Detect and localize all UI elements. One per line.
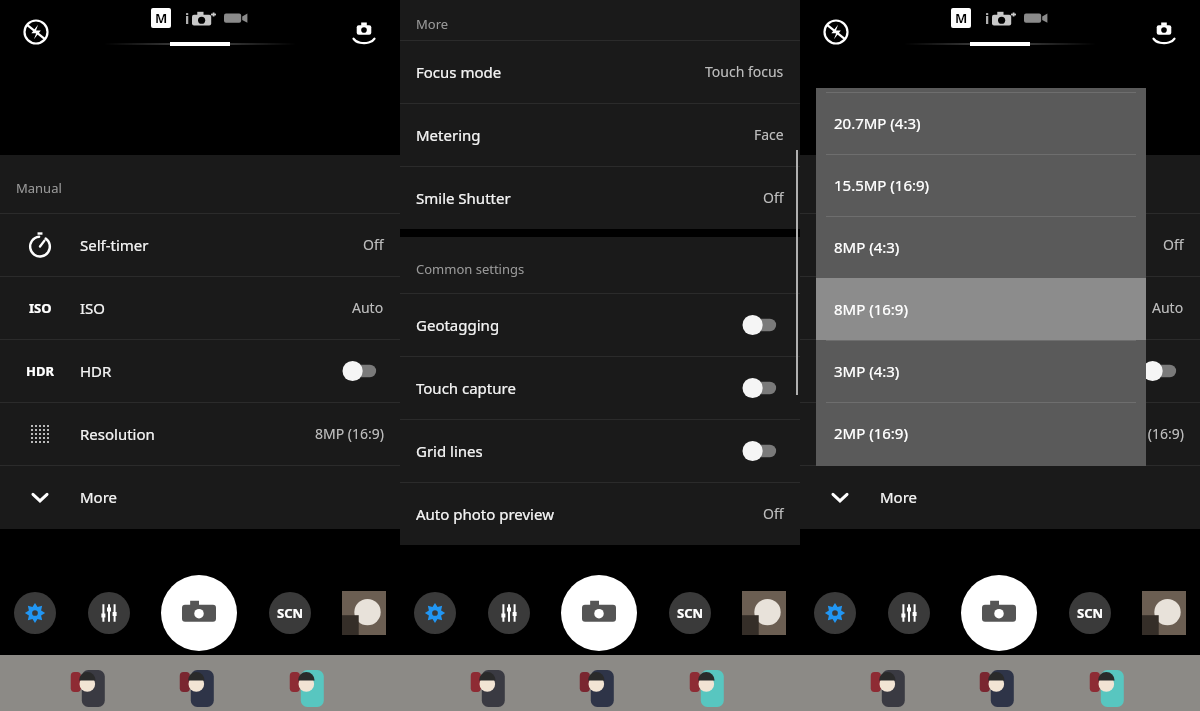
staticText: Auto <box>1152 298 1184 317</box>
button[interactable]: Switch camera <box>1142 10 1186 54</box>
button[interactable]: M <box>951 8 971 28</box>
button[interactable]: Shutter <box>961 575 1037 651</box>
staticText: 8MP (16:9) <box>834 299 908 319</box>
button[interactable]: Shutter <box>161 575 237 651</box>
button[interactable]: Self-timer <box>800 213 1200 276</box>
staticText: M <box>155 9 168 27</box>
button[interactable]: 15.5MP (16:9) <box>816 154 1146 216</box>
staticText: Manual <box>816 179 862 197</box>
staticText: i <box>185 9 190 28</box>
button[interactable]: Gallery <box>342 591 386 635</box>
button[interactable]: 20.7MP (4:3) <box>816 92 1146 154</box>
staticText: Resolution <box>80 424 155 444</box>
staticText: Geotagging <box>416 315 500 335</box>
button[interactable]: 2MP (16:9) <box>816 402 1146 464</box>
staticText: HDR <box>80 361 112 381</box>
staticText: Auto photo preview <box>416 504 554 524</box>
button[interactable]: Switch camera <box>342 10 386 54</box>
button[interactable]: Auto photo preview <box>400 482 800 545</box>
button[interactable]: Flash off <box>814 10 858 54</box>
button[interactable]: Geotagging <box>400 293 800 356</box>
staticText: 3MP (4:3) <box>834 361 900 381</box>
staticText: SCN <box>277 604 304 622</box>
button[interactable]: Gallery <box>1142 591 1186 635</box>
staticText: 8MP (4:3) <box>834 237 900 257</box>
button[interactable]: 3MP (4:3) <box>816 340 1146 402</box>
staticText: Off <box>1163 235 1184 254</box>
staticText: Touch capture <box>416 378 516 398</box>
staticText: Self-timer <box>880 235 949 255</box>
staticText: Resolution <box>880 424 955 444</box>
button[interactable]: ISO <box>0 276 400 339</box>
staticText: SCN <box>677 604 704 622</box>
staticText: ISO <box>829 299 852 317</box>
staticText: i <box>985 9 990 28</box>
button[interactable]: 8MP (4:3) <box>816 216 1146 278</box>
staticText: 15.5MP (16:9) <box>834 175 930 195</box>
staticText: HDR <box>826 362 854 380</box>
staticText: Grid lines <box>416 441 483 461</box>
staticText: Smile Shutter <box>416 188 511 208</box>
staticText: HDR <box>880 361 912 381</box>
staticText: More <box>416 15 449 33</box>
button[interactable]: M <box>151 8 171 28</box>
button[interactable]: Metering <box>400 103 800 166</box>
button[interactable]: HDR <box>0 339 400 402</box>
staticText: ISO <box>880 298 906 318</box>
staticText: 20.7MP (4:3) <box>834 113 921 133</box>
button[interactable]: Focus mode <box>400 40 800 103</box>
button[interactable]: Touch capture <box>400 356 800 419</box>
button[interactable]: Video <box>1024 10 1050 26</box>
staticText: More <box>880 487 918 507</box>
button[interactable]: Superior auto <box>185 9 216 28</box>
button[interactable]: Settings <box>14 592 56 634</box>
button[interactable]: SCN <box>669 592 711 634</box>
button[interactable]: Video <box>224 10 250 26</box>
staticText: M <box>955 9 968 27</box>
staticText: More <box>80 487 118 507</box>
button[interactable]: Adjust <box>888 592 930 634</box>
button[interactable]: SCN <box>269 592 311 634</box>
button[interactable]: Flash off <box>14 10 58 54</box>
staticText: Focus mode <box>416 62 502 82</box>
staticText: HDR <box>26 362 54 380</box>
button[interactable]: HDR <box>800 339 1200 402</box>
staticText: Self-timer <box>80 235 149 255</box>
staticText: SCN <box>1077 604 1104 622</box>
staticText: ISO <box>29 299 52 317</box>
staticText: Off <box>363 235 384 254</box>
button[interactable]: Gallery <box>742 591 786 635</box>
button[interactable]: Superior auto <box>985 9 1016 28</box>
staticText: Metering <box>416 125 481 145</box>
button[interactable]: Adjust <box>88 592 130 634</box>
button[interactable]: Grid lines <box>400 419 800 482</box>
staticText: Common settings <box>416 260 525 278</box>
button[interactable]: ISO <box>800 276 1200 339</box>
staticText: Manual <box>16 179 62 197</box>
button[interactable]: Resolution <box>800 402 1200 465</box>
staticText: Auto <box>352 298 384 317</box>
button[interactable]: Adjust <box>488 592 530 634</box>
button[interactable]: 8MP (16:9) <box>816 278 1146 340</box>
button[interactable]: More <box>0 465 400 529</box>
button[interactable]: Resolution <box>0 402 400 465</box>
staticText: 8MP (16:9) <box>1115 424 1184 443</box>
staticText: Touch focus <box>705 62 784 81</box>
staticText: Face <box>754 125 784 144</box>
button[interactable]: More <box>800 465 1200 529</box>
button[interactable]: Settings <box>814 592 856 634</box>
button[interactable]: Self-timer <box>0 213 400 276</box>
button[interactable]: SCN <box>1069 592 1111 634</box>
staticText: 8MP (16:9) <box>315 424 384 443</box>
staticText: Off <box>763 504 784 523</box>
staticText: Off <box>763 188 784 207</box>
staticText: 2MP (16:9) <box>834 423 908 443</box>
button[interactable]: Settings <box>414 592 456 634</box>
button[interactable]: Shutter <box>561 575 637 651</box>
button[interactable]: Smile Shutter <box>400 166 800 229</box>
staticText: ISO <box>80 298 106 318</box>
